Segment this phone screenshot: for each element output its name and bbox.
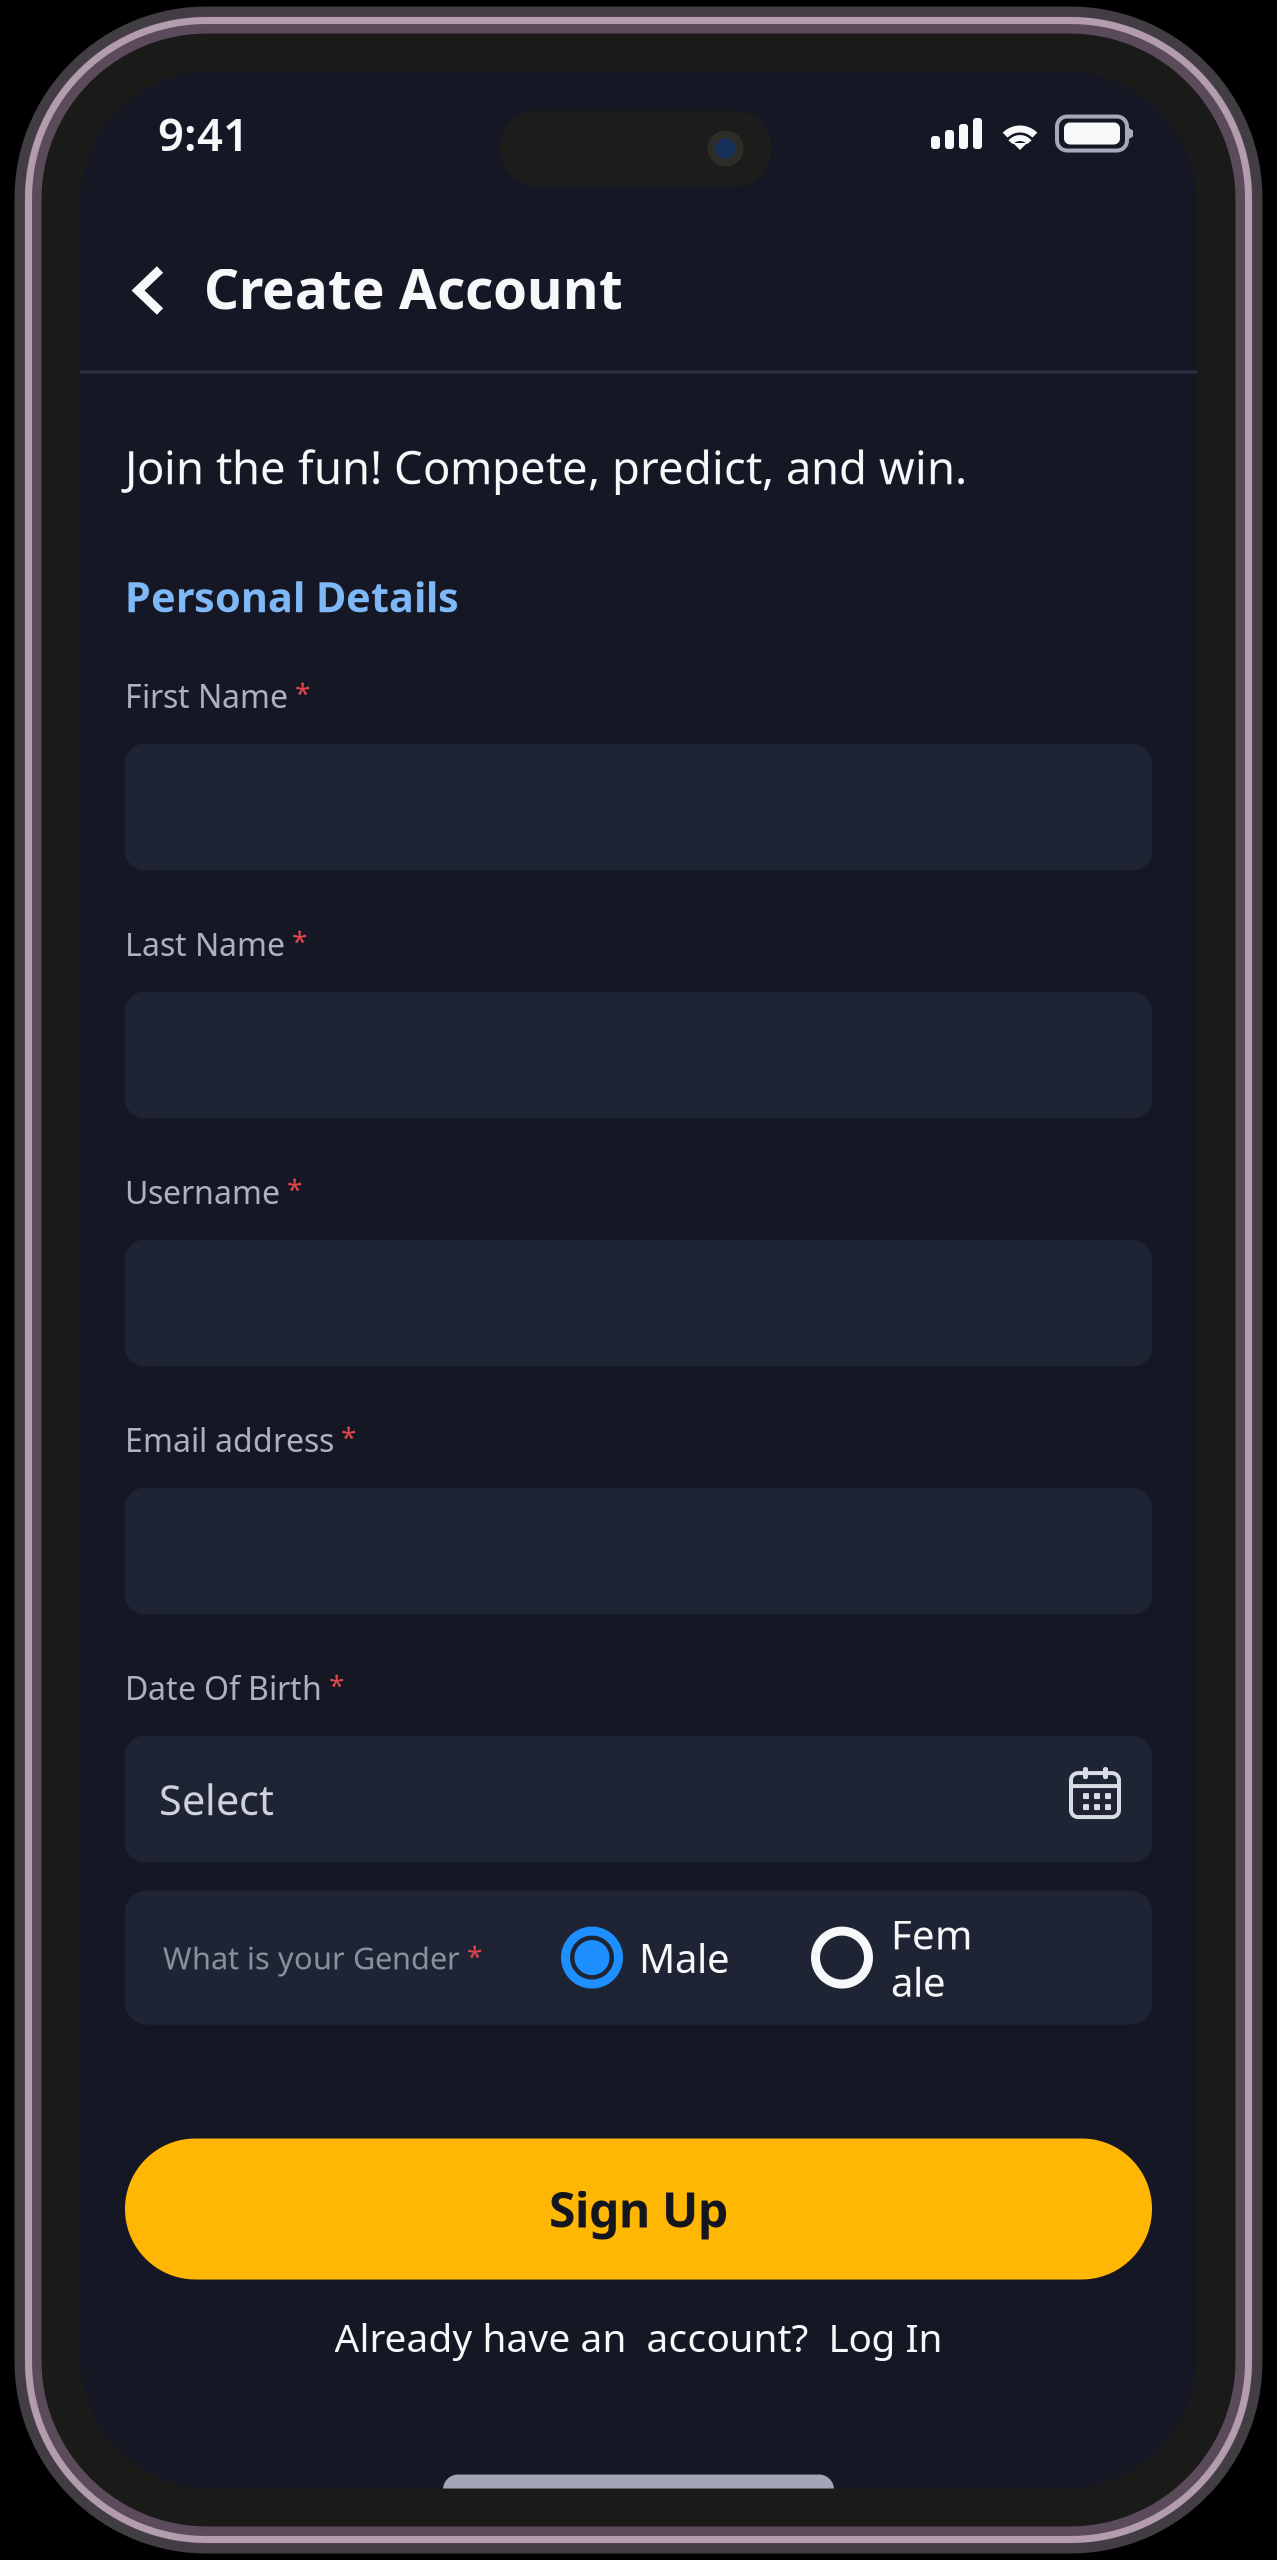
- staticText: Fem: [891, 1907, 972, 1961]
- staticText: ale: [891, 1955, 946, 2008]
- staticText: Personal Details: [125, 569, 459, 624]
- staticText: *: [460, 1937, 482, 1974]
- staticText: Sign Up: [549, 2177, 728, 2241]
- button[interactable]: Male: [561, 1927, 811, 1989]
- button[interactable]: Fem: [811, 1907, 1132, 2008]
- staticText: *: [322, 1666, 344, 1703]
- button[interactable]: Sign Up: [125, 2138, 1152, 2279]
- staticText: Create Account: [204, 251, 623, 324]
- staticText: Join the fun! Compete, predict, and win.: [125, 436, 967, 497]
- staticText: Last Name: [125, 922, 285, 965]
- staticText: What is your Gender: [163, 1937, 460, 1978]
- staticText: *: [334, 1418, 356, 1455]
- staticText: *: [288, 674, 310, 711]
- button[interactable]: Date Of Birth: [125, 1736, 1152, 1863]
- staticText: Select: [159, 1772, 274, 1826]
- staticText: Email address: [125, 1418, 334, 1461]
- staticText: 9:41: [158, 103, 249, 164]
- staticText: *: [285, 922, 307, 959]
- button[interactable]: Already have an account? Log In: [125, 2311, 1152, 2362]
- staticText: Date Of Birth: [125, 1666, 322, 1709]
- staticText: Username: [125, 1170, 280, 1213]
- button[interactable]: Back: [116, 251, 182, 329]
- staticText: Already have an account? Log In: [334, 2311, 942, 2363]
- staticText: First Name: [125, 674, 288, 717]
- staticText: Male: [639, 1931, 730, 1984]
- staticText: *: [280, 1170, 302, 1207]
